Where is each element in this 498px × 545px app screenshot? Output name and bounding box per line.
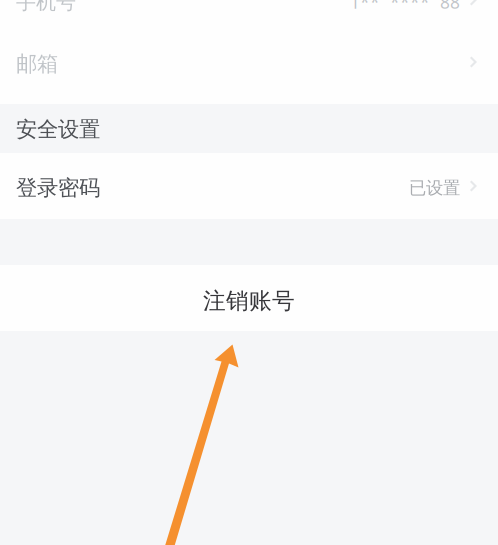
staticText: 邮箱	[16, 51, 58, 77]
staticText: 1** **** 88	[350, 0, 460, 13]
staticText: 已设置	[409, 177, 460, 199]
staticText: 手机号	[16, 0, 76, 14]
staticText: 安全设置	[16, 116, 100, 143]
button[interactable]: 手机号	[0, 0, 498, 33]
button[interactable]: 登录密码	[0, 153, 498, 219]
button[interactable]: 注销账号	[0, 265, 498, 331]
staticText: 注销账号	[203, 287, 295, 315]
button[interactable]: 邮箱	[0, 20, 498, 104]
staticText: 登录密码	[16, 175, 100, 201]
